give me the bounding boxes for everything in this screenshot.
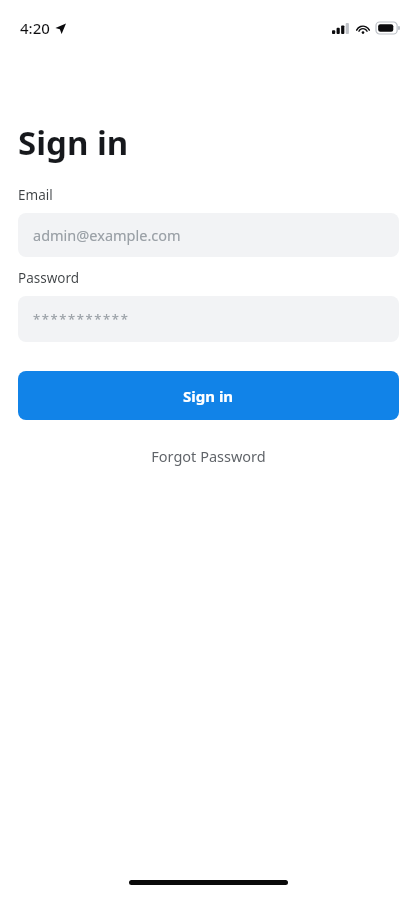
button[interactable]: *********** — [18, 296, 399, 342]
button[interactable]: Sign in — [18, 371, 399, 420]
button[interactable]: Forgot Password — [0, 441, 417, 471]
staticText: Password — [18, 269, 80, 287]
staticText: admin@example.com — [33, 225, 181, 245]
staticText: *********** — [33, 310, 130, 328]
staticText: Sign in — [183, 386, 234, 406]
staticText: Sign in — [18, 120, 129, 165]
button[interactable]: admin@example.com — [18, 213, 399, 257]
staticText: Email — [18, 186, 53, 204]
staticText: 4:20 — [20, 18, 50, 38]
staticText: Forgot Password — [151, 446, 266, 466]
other: Home — [129, 880, 288, 885]
